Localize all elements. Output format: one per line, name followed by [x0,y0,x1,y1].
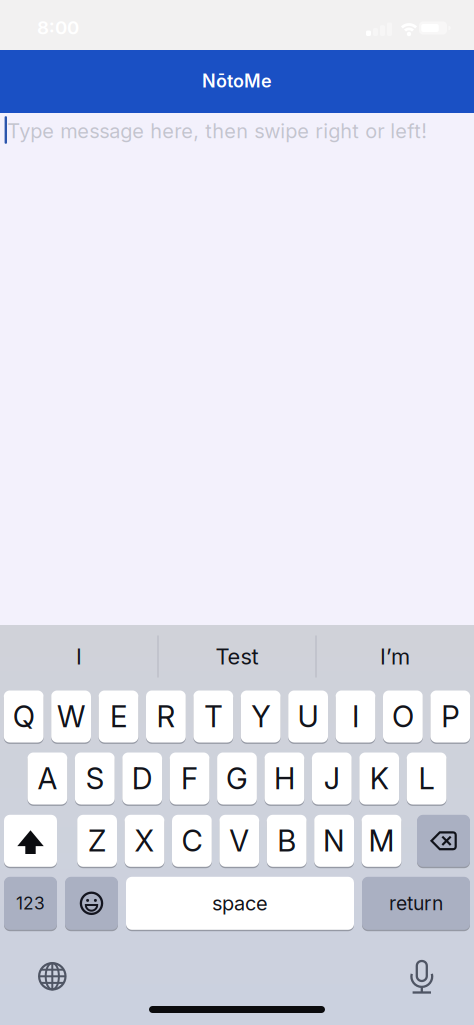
button[interactable]: Q [4,689,44,743]
staticText: F [181,761,198,796]
staticText: T [204,699,222,734]
button[interactable]: L [407,751,446,805]
staticText: C [181,823,202,859]
staticText: Q [13,699,35,734]
staticText: X [134,823,154,859]
button[interactable]: I [336,689,375,743]
button[interactable]: I [0,625,158,688]
staticText: 123 [16,893,45,914]
button[interactable]: Shift [4,814,57,868]
staticText: L [419,761,435,796]
staticText: I’m [380,643,410,670]
button[interactable]: P [430,689,470,743]
staticText: NōtoMe [202,70,272,92]
staticText: R [156,699,175,734]
staticText: Y [251,699,270,734]
button[interactable]: V [219,814,259,868]
staticText: P [441,699,459,734]
button[interactable]: C [172,814,212,868]
button[interactable]: G [217,751,257,805]
button[interactable]: M [362,814,401,868]
button[interactable]: return [362,876,470,931]
staticText: S [86,761,104,796]
button[interactable]: Y [241,689,281,743]
staticText: Test [215,643,258,670]
button[interactable]: Test [158,625,316,688]
staticText: Z [88,823,106,859]
button[interactable]: E [99,689,138,743]
button[interactable]: Next keyboard [32,956,72,996]
button[interactable]: N [314,814,354,868]
button[interactable]: Dictate [402,955,442,995]
staticText: W [57,699,85,734]
staticText: A [37,761,57,796]
button[interactable]: F [170,751,209,805]
button[interactable]: Emoji [65,876,118,931]
button[interactable]: Z [77,814,117,868]
staticText: I [76,643,82,670]
button[interactable]: R [146,689,186,743]
button[interactable]: I’m [316,625,474,688]
button[interactable]: O [383,689,423,743]
staticText: O [392,699,414,734]
button[interactable]: D [122,751,162,805]
button[interactable]: X [125,814,164,868]
staticText: K [370,761,389,796]
button[interactable]: Delete [417,814,470,868]
button[interactable]: A [27,751,67,805]
staticText: D [132,761,153,796]
button[interactable]: U [288,689,328,743]
staticText: return [389,892,443,915]
staticText: M [368,823,394,859]
staticText: U [298,699,319,734]
button[interactable]: 123 [4,876,57,931]
staticText: 8:00 [37,16,79,39]
staticText: space [212,891,268,915]
button[interactable]: space [126,876,354,931]
staticText: N [323,823,345,859]
staticText: Type message here, then swipe right or l… [7,119,427,143]
button[interactable]: T [193,689,233,743]
staticText: J [324,761,340,796]
staticText: V [229,823,249,859]
staticText: B [277,823,296,859]
button[interactable]: S [75,751,115,805]
staticText: I [352,699,359,734]
staticText: H [274,761,295,796]
button[interactable]: K [359,751,399,805]
button[interactable]: W [51,689,91,743]
button[interactable]: J [312,751,352,805]
staticText: E [110,699,127,734]
button[interactable]: H [264,751,304,805]
button[interactable]: B [267,814,307,868]
staticText: G [226,761,248,796]
